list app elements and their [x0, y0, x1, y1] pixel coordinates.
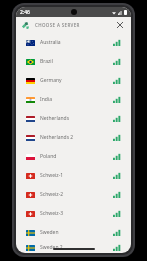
- button[interactable]: Poland: [16, 147, 131, 166]
- staticText: Netherlands: [40, 115, 70, 122]
- button[interactable]: Sweden: [16, 223, 131, 242]
- staticText: Poland: [40, 153, 57, 160]
- staticText: 2:46: [20, 9, 30, 16]
- staticText: Schweiz-2: [40, 191, 64, 198]
- staticText: Schweiz-1: [40, 172, 64, 179]
- button[interactable]: Netherlands 2: [16, 128, 131, 147]
- button[interactable]: Sweden 2: [16, 242, 131, 253]
- button[interactable]: Germany: [16, 71, 131, 90]
- button[interactable]: Netherlands: [16, 109, 131, 128]
- staticText: Netherlands 2: [40, 134, 74, 141]
- staticText: Brazil: [40, 58, 53, 65]
- staticText: Sweden 2: [40, 244, 63, 251]
- staticText: Australia: [40, 39, 61, 46]
- button[interactable]: Schweiz-2: [16, 185, 131, 204]
- button[interactable]: Schweiz-3: [16, 204, 131, 223]
- staticText: Sweden: [40, 229, 59, 236]
- staticText: CHOOSE A SERVER: [35, 22, 80, 28]
- staticText: Schweiz-3: [40, 210, 64, 217]
- button[interactable]: Australia: [16, 33, 131, 52]
- staticText: India: [40, 96, 52, 103]
- staticText: Germany: [40, 77, 62, 84]
- button[interactable]: India: [16, 90, 131, 109]
- button[interactable]: Schweiz-1: [16, 166, 131, 185]
- button[interactable]: Close: [114, 19, 126, 31]
- button[interactable]: Brazil: [16, 52, 131, 71]
